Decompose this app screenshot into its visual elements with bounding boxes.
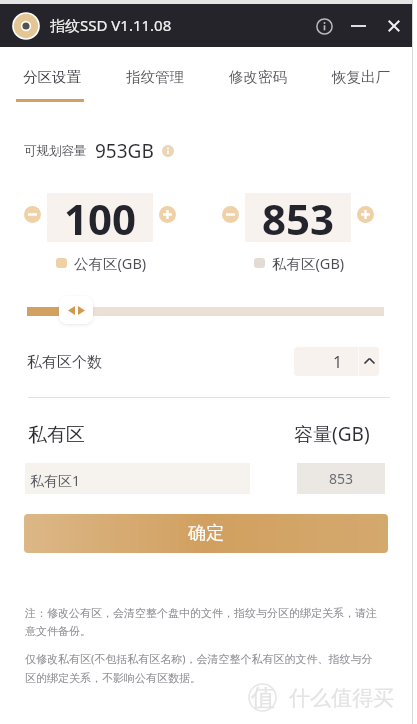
staticText: 853 bbox=[329, 469, 354, 488]
staticText: 仅修改私有区(不包括私有区名称)，会清空整个私有区的文件、指纹与分区的绑定关系，… bbox=[25, 651, 383, 685]
staticText: 953GB bbox=[95, 138, 154, 164]
button[interactable]: 分区设置 bbox=[0, 47, 103, 103]
button[interactable]: Decrease bbox=[222, 206, 239, 223]
button[interactable]: 确定 bbox=[24, 514, 388, 553]
button[interactable]: Info bbox=[307, 9, 341, 43]
staticText: 容量(GB) bbox=[294, 421, 370, 447]
staticText: 修改密码 bbox=[229, 68, 287, 86]
button[interactable]: 指纹管理 bbox=[103, 47, 206, 103]
staticText: 可规划容量 bbox=[24, 143, 87, 159]
staticText: 私有区1 bbox=[30, 471, 81, 490]
button[interactable]: 恢复出厂 bbox=[309, 47, 412, 103]
staticText: 恢复出厂 bbox=[332, 68, 390, 86]
staticText: 私有区 bbox=[28, 423, 85, 447]
staticText: 1 bbox=[333, 351, 343, 373]
staticText: 853 bbox=[262, 190, 335, 239]
staticText: 公有区(GB) bbox=[74, 253, 147, 273]
staticText: 注：修改公有区，会清空整个盘中的文件，指纹与分区的绑定关系，请注意文件备份。 bbox=[25, 606, 383, 638]
button[interactable]: Decrease bbox=[24, 206, 41, 223]
button[interactable]: Increase bbox=[357, 206, 374, 223]
button[interactable]: 修改密码 bbox=[206, 47, 309, 103]
button[interactable]: Minimize bbox=[341, 8, 376, 43]
button[interactable]: Increase bbox=[159, 206, 176, 223]
button[interactable]: 1 bbox=[294, 347, 379, 376]
staticText: 分区设置 bbox=[23, 68, 81, 86]
staticText: 值 bbox=[251, 683, 275, 713]
staticText: 私有区(GB) bbox=[272, 253, 345, 273]
button[interactable]: Capacity info bbox=[162, 145, 174, 157]
staticText: 什么值得买 bbox=[289, 685, 394, 711]
staticText: 100 bbox=[64, 190, 137, 239]
staticText: 指纹管理 bbox=[126, 68, 184, 86]
button[interactable]: 私有区1 bbox=[25, 463, 250, 494]
staticText: 指纹SSD V1.11.08 bbox=[50, 15, 172, 35]
button[interactable]: Drag to adjust partition bbox=[59, 296, 93, 324]
staticText: 确定 bbox=[188, 522, 224, 545]
staticText: 私有区个数 bbox=[27, 353, 102, 372]
button[interactable]: Close bbox=[376, 8, 411, 43]
